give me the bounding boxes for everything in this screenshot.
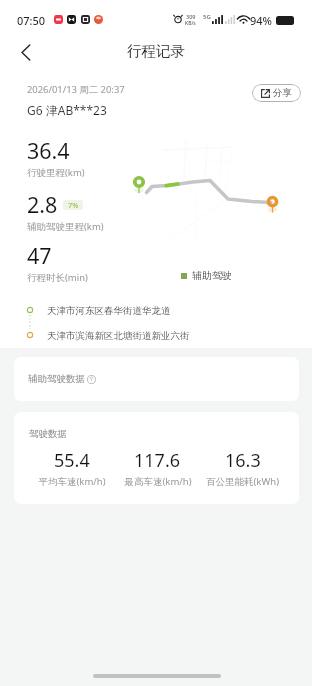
staticText: 行驶里程(km) [27,166,85,179]
button[interactable]: 分享 [252,84,301,102]
staticText: 117.6 [134,448,181,473]
staticText: 55.4 [54,448,90,473]
staticText: 309 [186,13,196,20]
staticText: 行程记录 [127,42,185,60]
staticText: 天津市滨海新区北塘街道新业六街 [47,330,190,342]
staticText: 辅助驾驶数据 [28,373,85,385]
staticText: 94% [250,13,272,28]
staticText: 2.8 [27,190,58,219]
staticText: 7% [68,200,79,210]
staticText: 驾驶数据 [29,428,67,440]
staticText: 47 [27,241,52,270]
staticText: 分享 [273,87,292,99]
staticText: 16.3 [225,448,261,473]
staticText: 辅助驾驶 [192,269,232,282]
staticText: 2026/01/13 周二 20:37 [27,83,125,96]
staticText: G6 津AB***23 [27,102,107,118]
staticText: 最高车速(km/h) [124,475,192,488]
staticText: 平均车速(km/h) [38,475,106,488]
staticText: KB/s [185,20,196,27]
staticText: 辅助驾驶里程(km) [27,220,104,233]
staticText: 36.4 [27,136,70,165]
staticText: 07:50 [17,13,46,28]
staticText: 百公里能耗(kWh) [206,475,279,488]
button[interactable]: Back [11,38,40,67]
button[interactable]: 辅助驾驶数据 [14,357,299,401]
staticText: 5G [203,13,211,21]
staticText: 天津市河东区春华街道华龙道 [47,305,171,317]
staticText: 行程时长(min) [27,271,88,284]
